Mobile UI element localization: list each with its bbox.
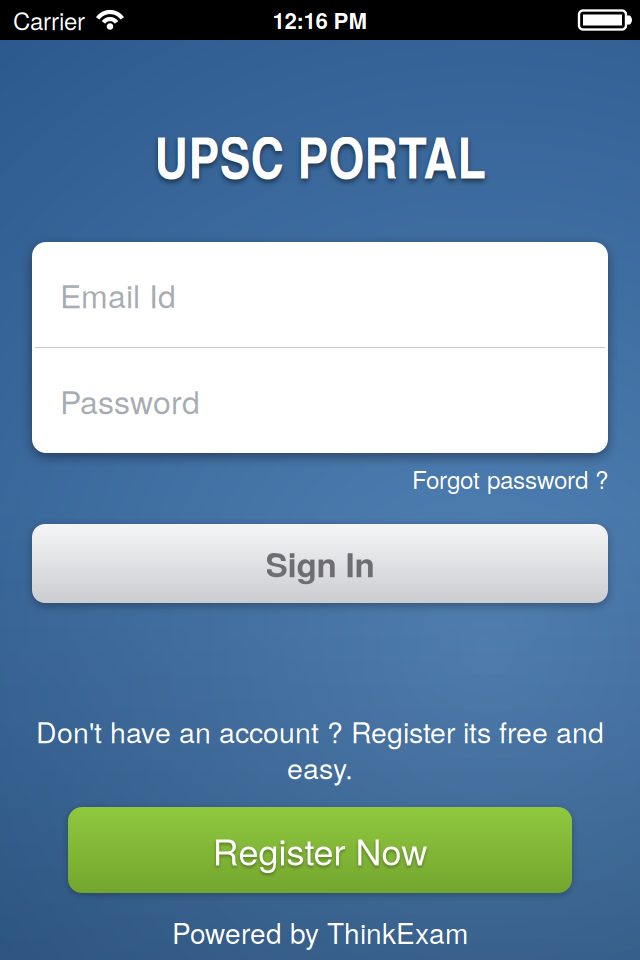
staticText: Forgot password ? (412, 461, 608, 496)
button[interactable]: Password (32, 348, 608, 453)
staticText: Email Id (60, 272, 176, 317)
staticText: easy. (287, 747, 353, 787)
staticText: 12:16 PM (272, 4, 367, 36)
staticText: Carrier (13, 3, 85, 37)
button[interactable]: Sign In (32, 524, 608, 603)
staticText: Don't have an account ? Register its fre… (36, 711, 604, 751)
staticText: UPSC PORTAL (154, 116, 485, 196)
button[interactable]: Email Id (32, 242, 608, 347)
staticText: Register Now (212, 824, 427, 876)
staticText: Powered by ThinkExam (172, 912, 468, 952)
button[interactable]: Register Now (68, 807, 572, 893)
staticText: Password (60, 378, 200, 423)
staticText: Sign In (265, 540, 374, 587)
button[interactable]: Forgot password ? (412, 461, 608, 496)
